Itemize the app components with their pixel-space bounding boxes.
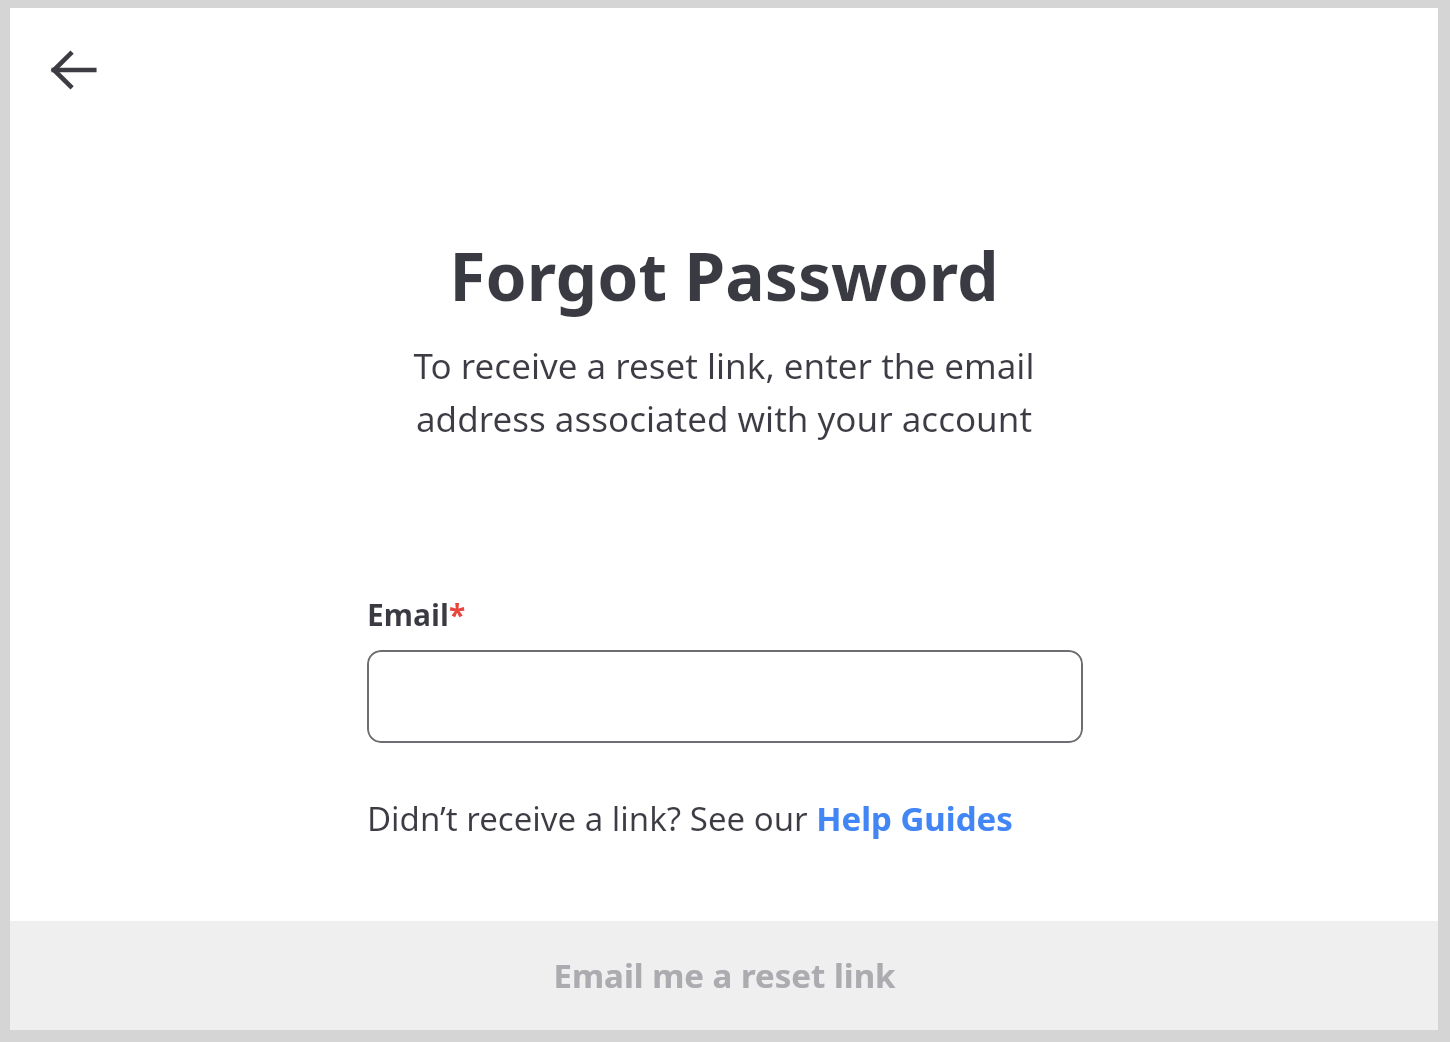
staticText: Forgot Password	[449, 230, 999, 320]
staticText: Email*	[367, 594, 466, 635]
button[interactable]: Didn’t receive a link? See our Help Guid…	[367, 796, 1013, 841]
staticText: Didn’t receive a link? See our Help Guid…	[367, 796, 1013, 841]
button[interactable]: Email input field	[367, 650, 1083, 743]
staticText: Email me a reset link	[553, 953, 896, 998]
button[interactable]: Email me a reset link	[10, 921, 1438, 1030]
staticText: To receive a reset link, enter the email…	[374, 342, 1074, 442]
button[interactable]: Back	[44, 40, 104, 100]
